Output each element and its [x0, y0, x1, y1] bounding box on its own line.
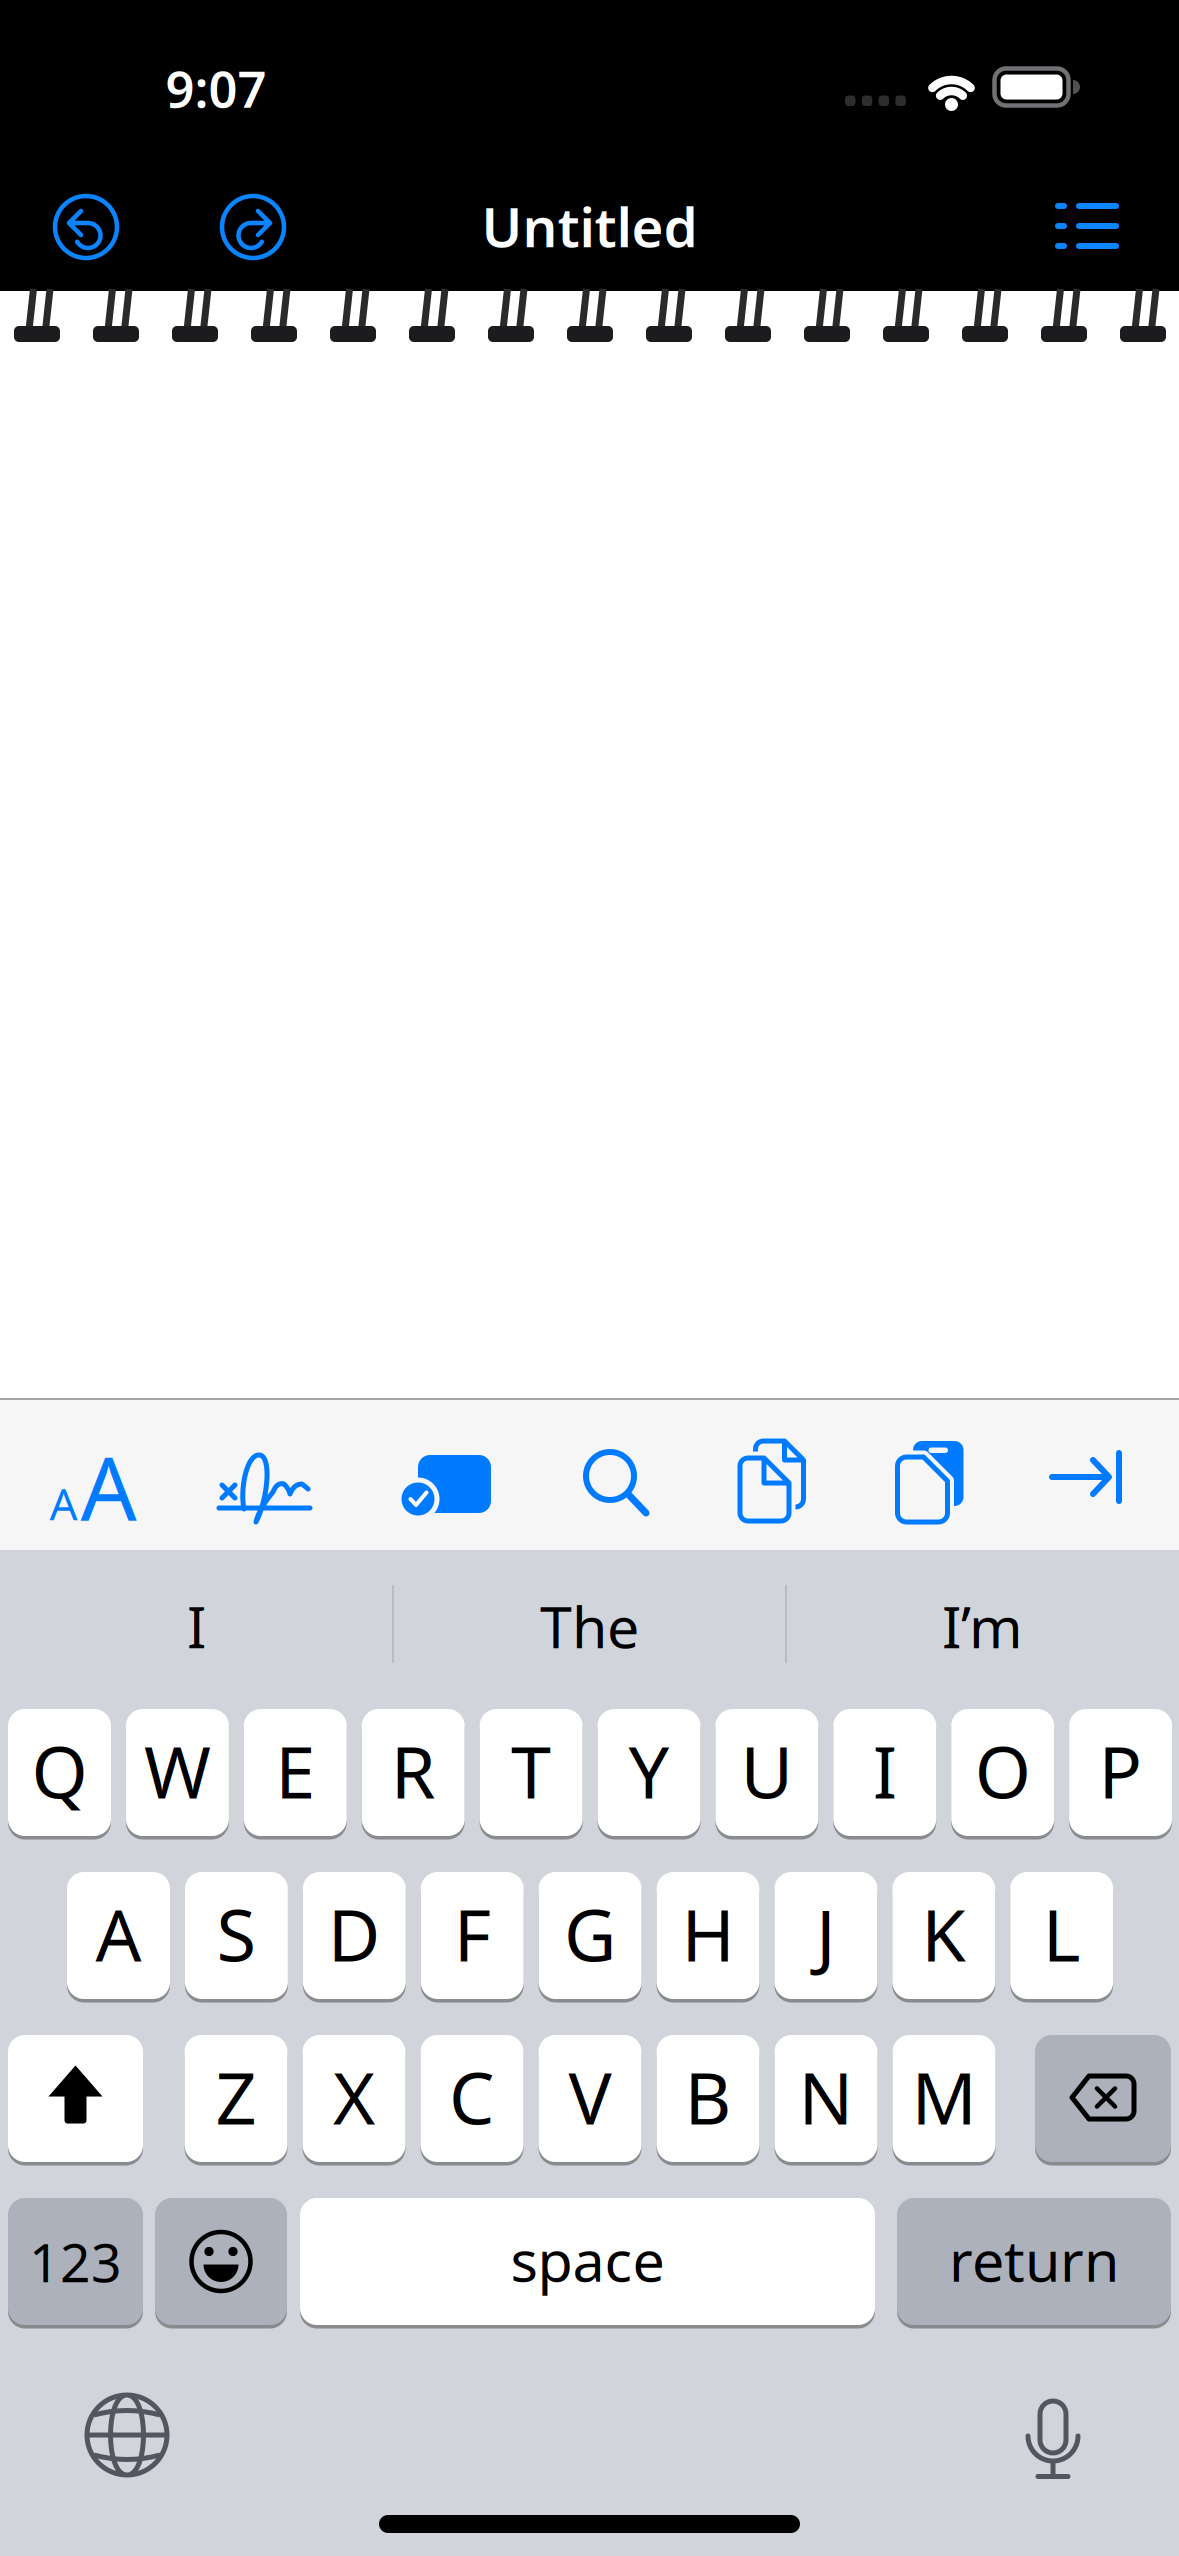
staticText: P	[1099, 1723, 1143, 1818]
staticText: I	[873, 1723, 897, 1818]
staticText: W	[144, 1723, 211, 1818]
button[interactable]	[731, 1435, 811, 1527]
button[interactable]: T	[480, 1707, 583, 1838]
button[interactable]	[1049, 1451, 1129, 1511]
staticText: A	[95, 1886, 141, 1981]
staticText: S	[216, 1886, 256, 1981]
button[interactable]: Z	[184, 2033, 287, 2164]
button[interactable]: W	[126, 1707, 229, 1838]
button[interactable]	[155, 2196, 287, 2327]
button[interactable]: H	[656, 1870, 759, 2001]
button[interactable]	[81, 2389, 173, 2481]
staticText: B	[684, 2049, 731, 2144]
staticText: A	[49, 1474, 77, 1532]
staticText: T	[511, 1723, 551, 1818]
staticText: H	[681, 1886, 734, 1981]
staticText: V	[568, 2049, 611, 2144]
button[interactable]	[213, 1442, 323, 1532]
button[interactable]	[1054, 200, 1124, 252]
button[interactable]: The	[399, 1556, 779, 1696]
button[interactable]: R	[362, 1707, 465, 1838]
button[interactable]: X	[302, 2033, 405, 2164]
staticText: I	[187, 1588, 206, 1664]
staticText: 9:07	[165, 54, 266, 122]
staticText: The	[540, 1588, 639, 1664]
button[interactable]: J	[774, 1870, 877, 2001]
button[interactable]: 123	[8, 2196, 143, 2327]
staticText: I’m	[942, 1588, 1023, 1664]
staticText: J	[816, 1886, 836, 1981]
button[interactable]: N	[774, 2033, 877, 2164]
button[interactable]: space	[300, 2196, 875, 2327]
button[interactable]	[1018, 2396, 1088, 2492]
button[interactable]: G	[539, 1870, 642, 2001]
button[interactable]: U	[715, 1707, 818, 1838]
button[interactable]: V	[538, 2033, 641, 2164]
button[interactable]: O	[951, 1707, 1054, 1838]
button[interactable]: B	[656, 2033, 759, 2164]
staticText: Untitled	[481, 190, 697, 262]
button[interactable]	[8, 2033, 143, 2164]
staticText: O	[975, 1723, 1031, 1818]
button[interactable]	[1035, 2033, 1171, 2164]
button[interactable]: I’m	[792, 1556, 1172, 1696]
staticText: X	[333, 2049, 375, 2144]
staticText: K	[921, 1886, 966, 1981]
button[interactable]: Y	[597, 1707, 700, 1838]
button[interactable]: A	[38, 1431, 148, 1541]
button[interactable]	[889, 1435, 969, 1527]
staticText: Y	[628, 1723, 669, 1818]
staticText: L	[1043, 1886, 1081, 1981]
staticText: A	[80, 1428, 136, 1544]
staticText: Q	[31, 1723, 87, 1818]
staticText: G	[564, 1886, 616, 1981]
staticText: R	[391, 1723, 436, 1818]
staticText: return	[949, 2221, 1119, 2297]
staticText: M	[911, 2049, 976, 2144]
staticText: C	[449, 2049, 495, 2144]
button[interactable]	[47, 188, 125, 266]
button[interactable]	[400, 1445, 496, 1521]
staticText: N	[798, 2049, 853, 2144]
button[interactable]: D	[303, 1870, 406, 2001]
button[interactable]: C	[420, 2033, 523, 2164]
button[interactable]: K	[892, 1870, 995, 2001]
staticText: space	[510, 2221, 664, 2297]
button[interactable]: S	[185, 1870, 288, 2001]
staticText: E	[275, 1723, 315, 1818]
button[interactable]: A	[67, 1870, 170, 2001]
staticText: U	[740, 1723, 793, 1818]
button[interactable]: I	[833, 1707, 936, 1838]
button[interactable]: I	[6, 1556, 386, 1696]
button[interactable]: P	[1069, 1707, 1172, 1838]
button[interactable]: E	[244, 1707, 347, 1838]
staticText: Z	[215, 2049, 256, 2144]
button[interactable]	[214, 188, 292, 266]
button[interactable]: L	[1010, 1870, 1113, 2001]
button[interactable]: F	[421, 1870, 524, 2001]
button[interactable]: return	[897, 2196, 1171, 2327]
button[interactable]: Q	[8, 1707, 111, 1838]
staticText: D	[328, 1886, 381, 1981]
button[interactable]: M	[892, 2033, 995, 2164]
staticText: 123	[29, 2226, 122, 2297]
button[interactable]	[577, 1445, 653, 1521]
staticText: F	[454, 1886, 491, 1981]
